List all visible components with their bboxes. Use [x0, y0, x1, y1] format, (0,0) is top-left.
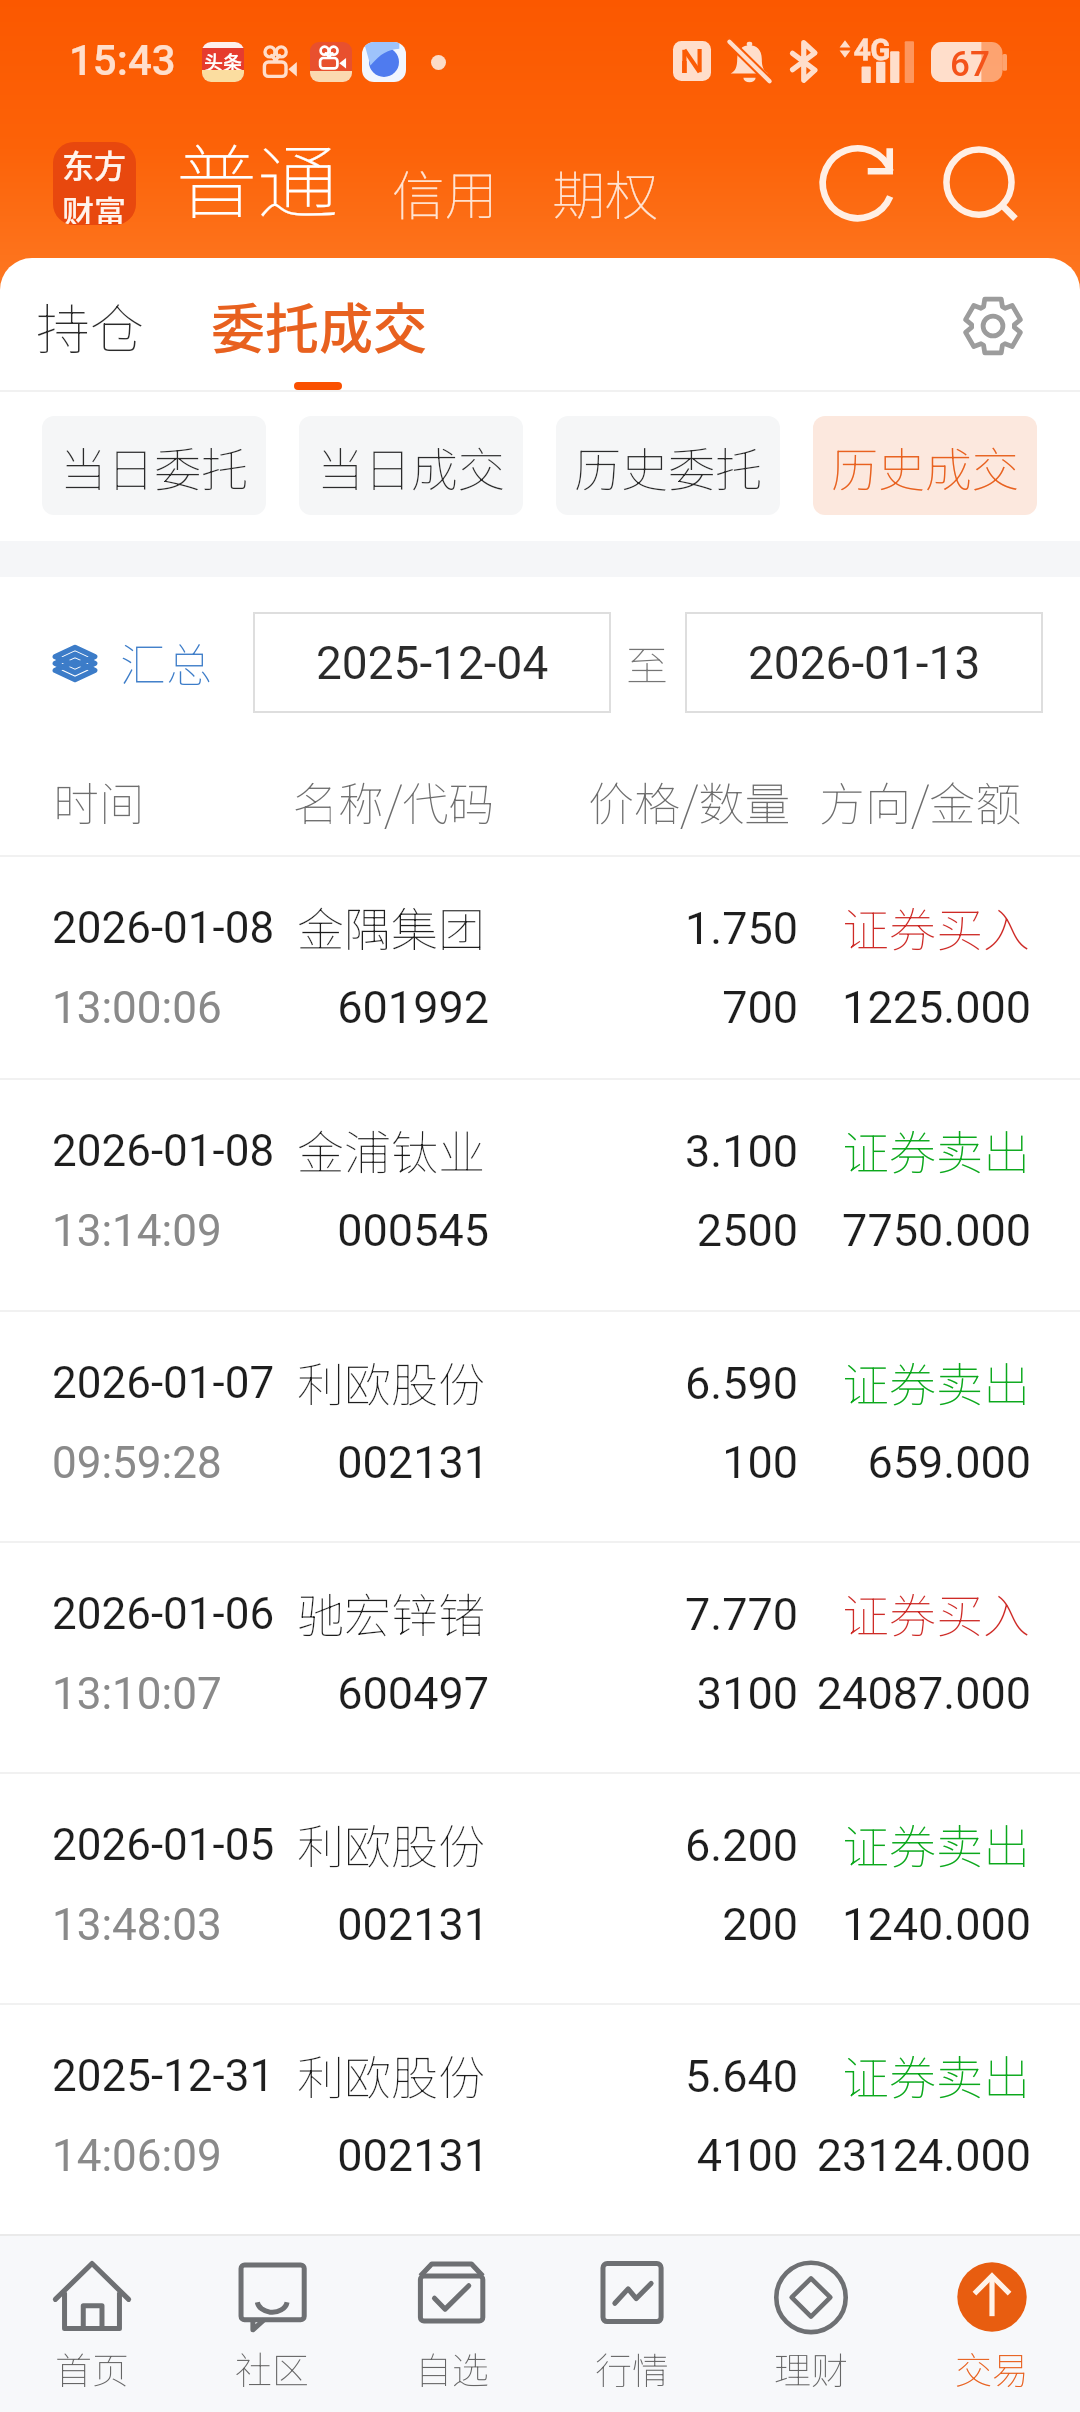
staticText: 证券买入 [0, 892, 1030, 960]
staticText: 4G [854, 33, 891, 67]
staticText: 13:48:03 [52, 1899, 222, 1951]
staticText: 驰宏锌锗 [297, 1578, 485, 1646]
button[interactable]: 2026-01-08 [0, 857, 1080, 1078]
staticText: 当日委托 [60, 432, 248, 500]
staticText: 利欧股份 [297, 1809, 485, 1877]
button[interactable]: Search [937, 141, 1025, 229]
staticText: 2026-01-08 [52, 1125, 275, 1177]
staticText: 67 [950, 44, 990, 85]
staticText: 证券卖出 [0, 1347, 1030, 1415]
staticText: 1.750 [0, 902, 798, 955]
button[interactable]: 信用 [384, 148, 506, 237]
button[interactable]: 首页 [4, 2234, 180, 2412]
staticText: 659.000 [0, 1436, 1031, 1489]
staticText: 002131 [0, 1436, 489, 1489]
staticText: 名称/代码 [292, 768, 495, 835]
staticText: 行情 [595, 2341, 669, 2395]
staticText: 普通 [176, 118, 339, 235]
staticText: 方向/金额 [819, 768, 1022, 835]
staticText: 3.100 [0, 1125, 798, 1178]
staticText: 2026-01-05 [52, 1819, 275, 1871]
staticText: 2026-01-07 [52, 1357, 275, 1409]
staticText: 14:06:09 [52, 2130, 222, 2182]
button[interactable]: 委托成交 [205, 276, 433, 374]
button[interactable]: 历史成交 [813, 416, 1037, 515]
staticText: 2026-01-13 [748, 636, 981, 690]
button[interactable]: 行情 [544, 2234, 720, 2412]
staticText: 1240.000 [0, 1898, 1031, 1951]
staticText: 09:59:28 [52, 1437, 222, 1489]
staticText: 4100 [0, 2129, 798, 2182]
staticText: 利欧股份 [297, 1347, 485, 1415]
staticText: 700 [0, 981, 798, 1034]
staticText: 6.590 [0, 1357, 798, 1410]
button[interactable]: 自选 [364, 2234, 540, 2412]
button[interactable]: 当日委托 [42, 416, 266, 515]
button[interactable]: 2026-01-13 [686, 613, 1042, 712]
button[interactable]: 当日成交 [299, 416, 523, 515]
staticText: 历史成交 [831, 432, 1019, 500]
button[interactable]: 理财 [723, 2234, 899, 2412]
button[interactable]: 2026-01-08 [0, 1080, 1080, 1310]
staticText: 当日成交 [317, 432, 505, 500]
staticText: 23124.000 [0, 2129, 1031, 2182]
staticText: 7750.000 [0, 1204, 1031, 1257]
button[interactable]: 历史委托 [556, 416, 780, 515]
staticText: 持仓 [36, 286, 144, 364]
staticText: 证券买入 [0, 1578, 1030, 1646]
staticText: 期权 [552, 154, 658, 231]
staticText: 委托成交 [211, 286, 427, 364]
button[interactable]: Settings [953, 286, 1033, 366]
staticText: 时间 [53, 768, 145, 835]
staticText: 2026-01-06 [52, 1588, 275, 1640]
staticText: 24087.000 [0, 1667, 1031, 1720]
staticText: 2026-01-08 [52, 902, 275, 954]
button[interactable]: 汇总 [52, 629, 212, 696]
button[interactable]: 2025-12-31 [0, 2005, 1080, 2234]
staticText: 600497 [0, 1667, 489, 1720]
staticText: 100 [0, 1436, 798, 1489]
button[interactable]: 2026-01-07 [0, 1312, 1080, 1541]
button[interactable]: 普通 [168, 112, 347, 241]
button[interactable]: 持仓 [30, 276, 150, 374]
button[interactable]: 2025-12-04 [254, 613, 610, 712]
staticText: 1225.000 [0, 981, 1031, 1034]
staticText: 200 [0, 1898, 798, 1951]
staticText: 头条 [204, 48, 243, 76]
button[interactable]: 交易 [904, 2234, 1080, 2412]
staticText: 证券卖出 [0, 1809, 1030, 1877]
staticText: 至 [626, 632, 669, 693]
staticText: 6.200 [0, 1819, 798, 1872]
staticText: 财富 [62, 187, 127, 224]
staticText: 2500 [0, 1204, 798, 1257]
button[interactable]: 期权 [544, 148, 666, 237]
staticText: 3100 [0, 1667, 798, 1720]
staticText: 601992 [0, 981, 489, 1034]
staticText: 理财 [774, 2341, 848, 2395]
staticText: 证券卖出 [0, 2040, 1030, 2108]
staticText: 002131 [0, 2129, 489, 2182]
staticText: 2025-12-31 [52, 2050, 275, 2102]
staticText: 13:10:07 [52, 1668, 222, 1720]
staticText: 首页 [55, 2341, 129, 2395]
staticText: 13:00:06 [52, 982, 222, 1034]
button[interactable]: 社区 [184, 2234, 360, 2412]
staticText: 历史委托 [574, 432, 762, 500]
staticText: 2025-12-04 [316, 636, 549, 690]
staticText: 信用 [392, 154, 498, 231]
staticText: 价格/数量 [588, 768, 791, 835]
staticText: 东方 [62, 142, 127, 187]
staticText: 汇总 [120, 629, 212, 696]
staticText: 7.770 [0, 1588, 798, 1641]
button[interactable]: Refresh [808, 140, 896, 228]
staticText: 15:43 [69, 36, 176, 85]
staticText: 5.640 [0, 2050, 798, 2103]
staticText: 交易 [955, 2341, 1029, 2395]
staticText: 002131 [0, 1898, 489, 1951]
staticText: 金隅集团 [297, 892, 485, 960]
staticText: 社区 [235, 2341, 309, 2395]
staticText: 证券卖出 [0, 1115, 1030, 1183]
staticText: 13:14:09 [52, 1205, 222, 1257]
button[interactable]: 2026-01-05 [0, 1774, 1080, 2003]
button[interactable]: 2026-01-06 [0, 1543, 1080, 1772]
